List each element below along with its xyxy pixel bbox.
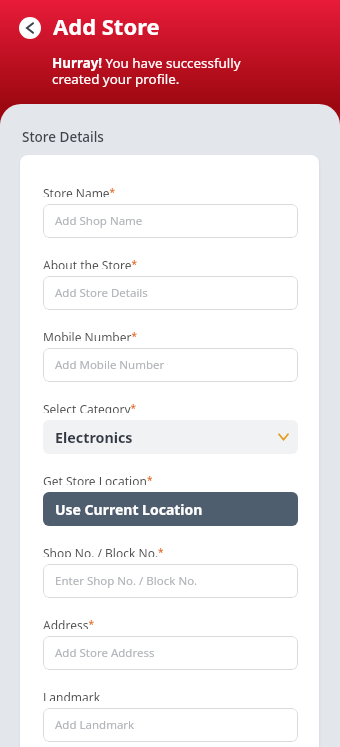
button[interactable]: Add Store Address bbox=[43, 636, 298, 670]
staticText: Store Name* bbox=[43, 185, 116, 197]
button[interactable]: Add Shop Name bbox=[43, 204, 298, 238]
button[interactable]: Use Current Location bbox=[43, 492, 298, 526]
staticText: Electronics bbox=[55, 428, 133, 447]
button[interactable]: Add Store Details bbox=[43, 276, 298, 310]
button[interactable]: Add Landmark bbox=[43, 708, 298, 742]
staticText: Shop No. / Block No.* bbox=[43, 545, 164, 557]
staticText: Hurray! You have successfully created yo… bbox=[52, 54, 252, 88]
staticText: Store Details bbox=[22, 128, 104, 146]
staticText: Add Mobile Number bbox=[55, 357, 165, 373]
staticText: Add Store Address bbox=[55, 645, 155, 661]
staticText: Add Store Details bbox=[55, 285, 148, 301]
staticText: Select Category* bbox=[43, 401, 137, 413]
button[interactable]: Electronics bbox=[43, 420, 298, 454]
staticText: Landmark bbox=[43, 689, 101, 701]
staticText: Address* bbox=[43, 617, 94, 629]
staticText: About the Store* bbox=[43, 257, 137, 269]
button[interactable]: Enter Shop No. / Block No. bbox=[43, 564, 298, 598]
staticText: Get Store Location* bbox=[43, 473, 153, 485]
button[interactable]: Back bbox=[19, 17, 41, 39]
staticText: Add Landmark bbox=[55, 717, 135, 733]
button[interactable]: Add Mobile Number bbox=[43, 348, 298, 382]
staticText: Add Store bbox=[53, 11, 160, 41]
staticText: Mobile Number* bbox=[43, 329, 137, 341]
staticText: Add Shop Name bbox=[55, 213, 143, 229]
staticText: Use Current Location bbox=[55, 500, 203, 519]
staticText: Enter Shop No. / Block No. bbox=[55, 573, 198, 589]
